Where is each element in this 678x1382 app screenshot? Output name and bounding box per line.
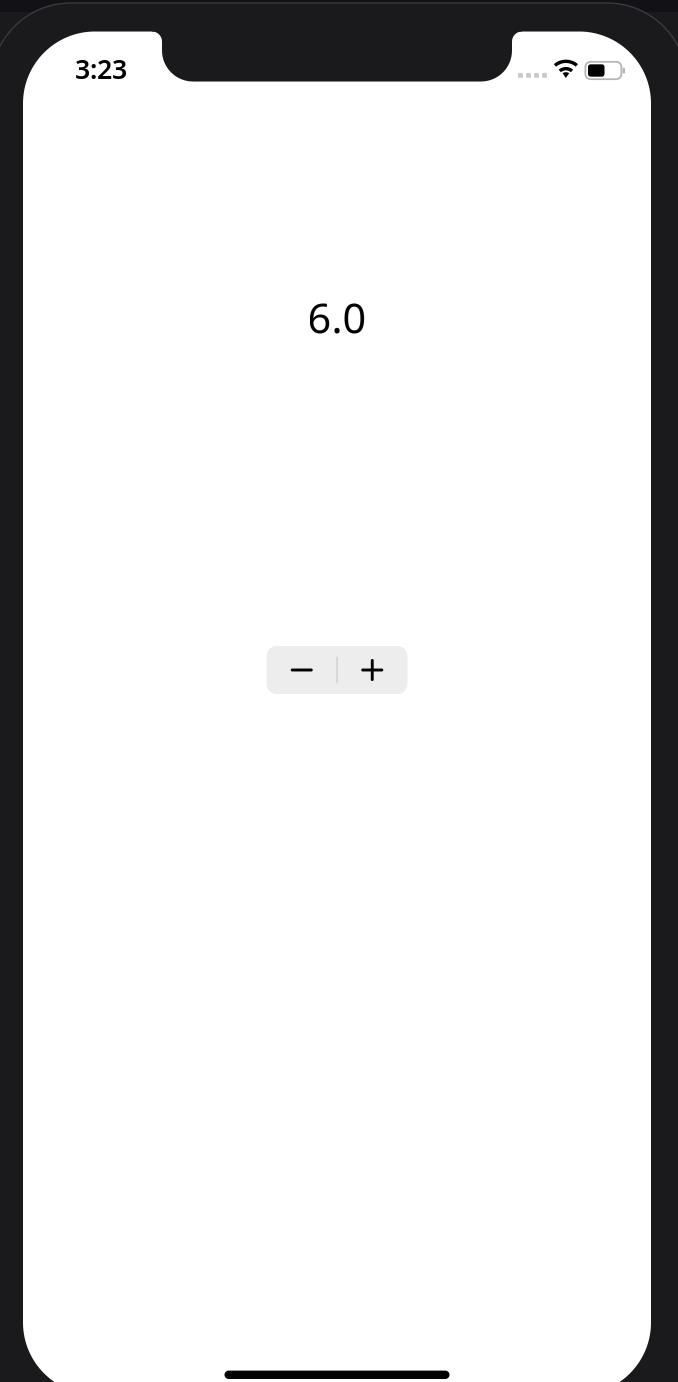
staticText: 6.0 <box>307 290 366 345</box>
button[interactable]: Increment <box>337 646 407 694</box>
button[interactable]: Decrement <box>266 646 337 694</box>
staticText: 3:23 <box>75 51 127 86</box>
